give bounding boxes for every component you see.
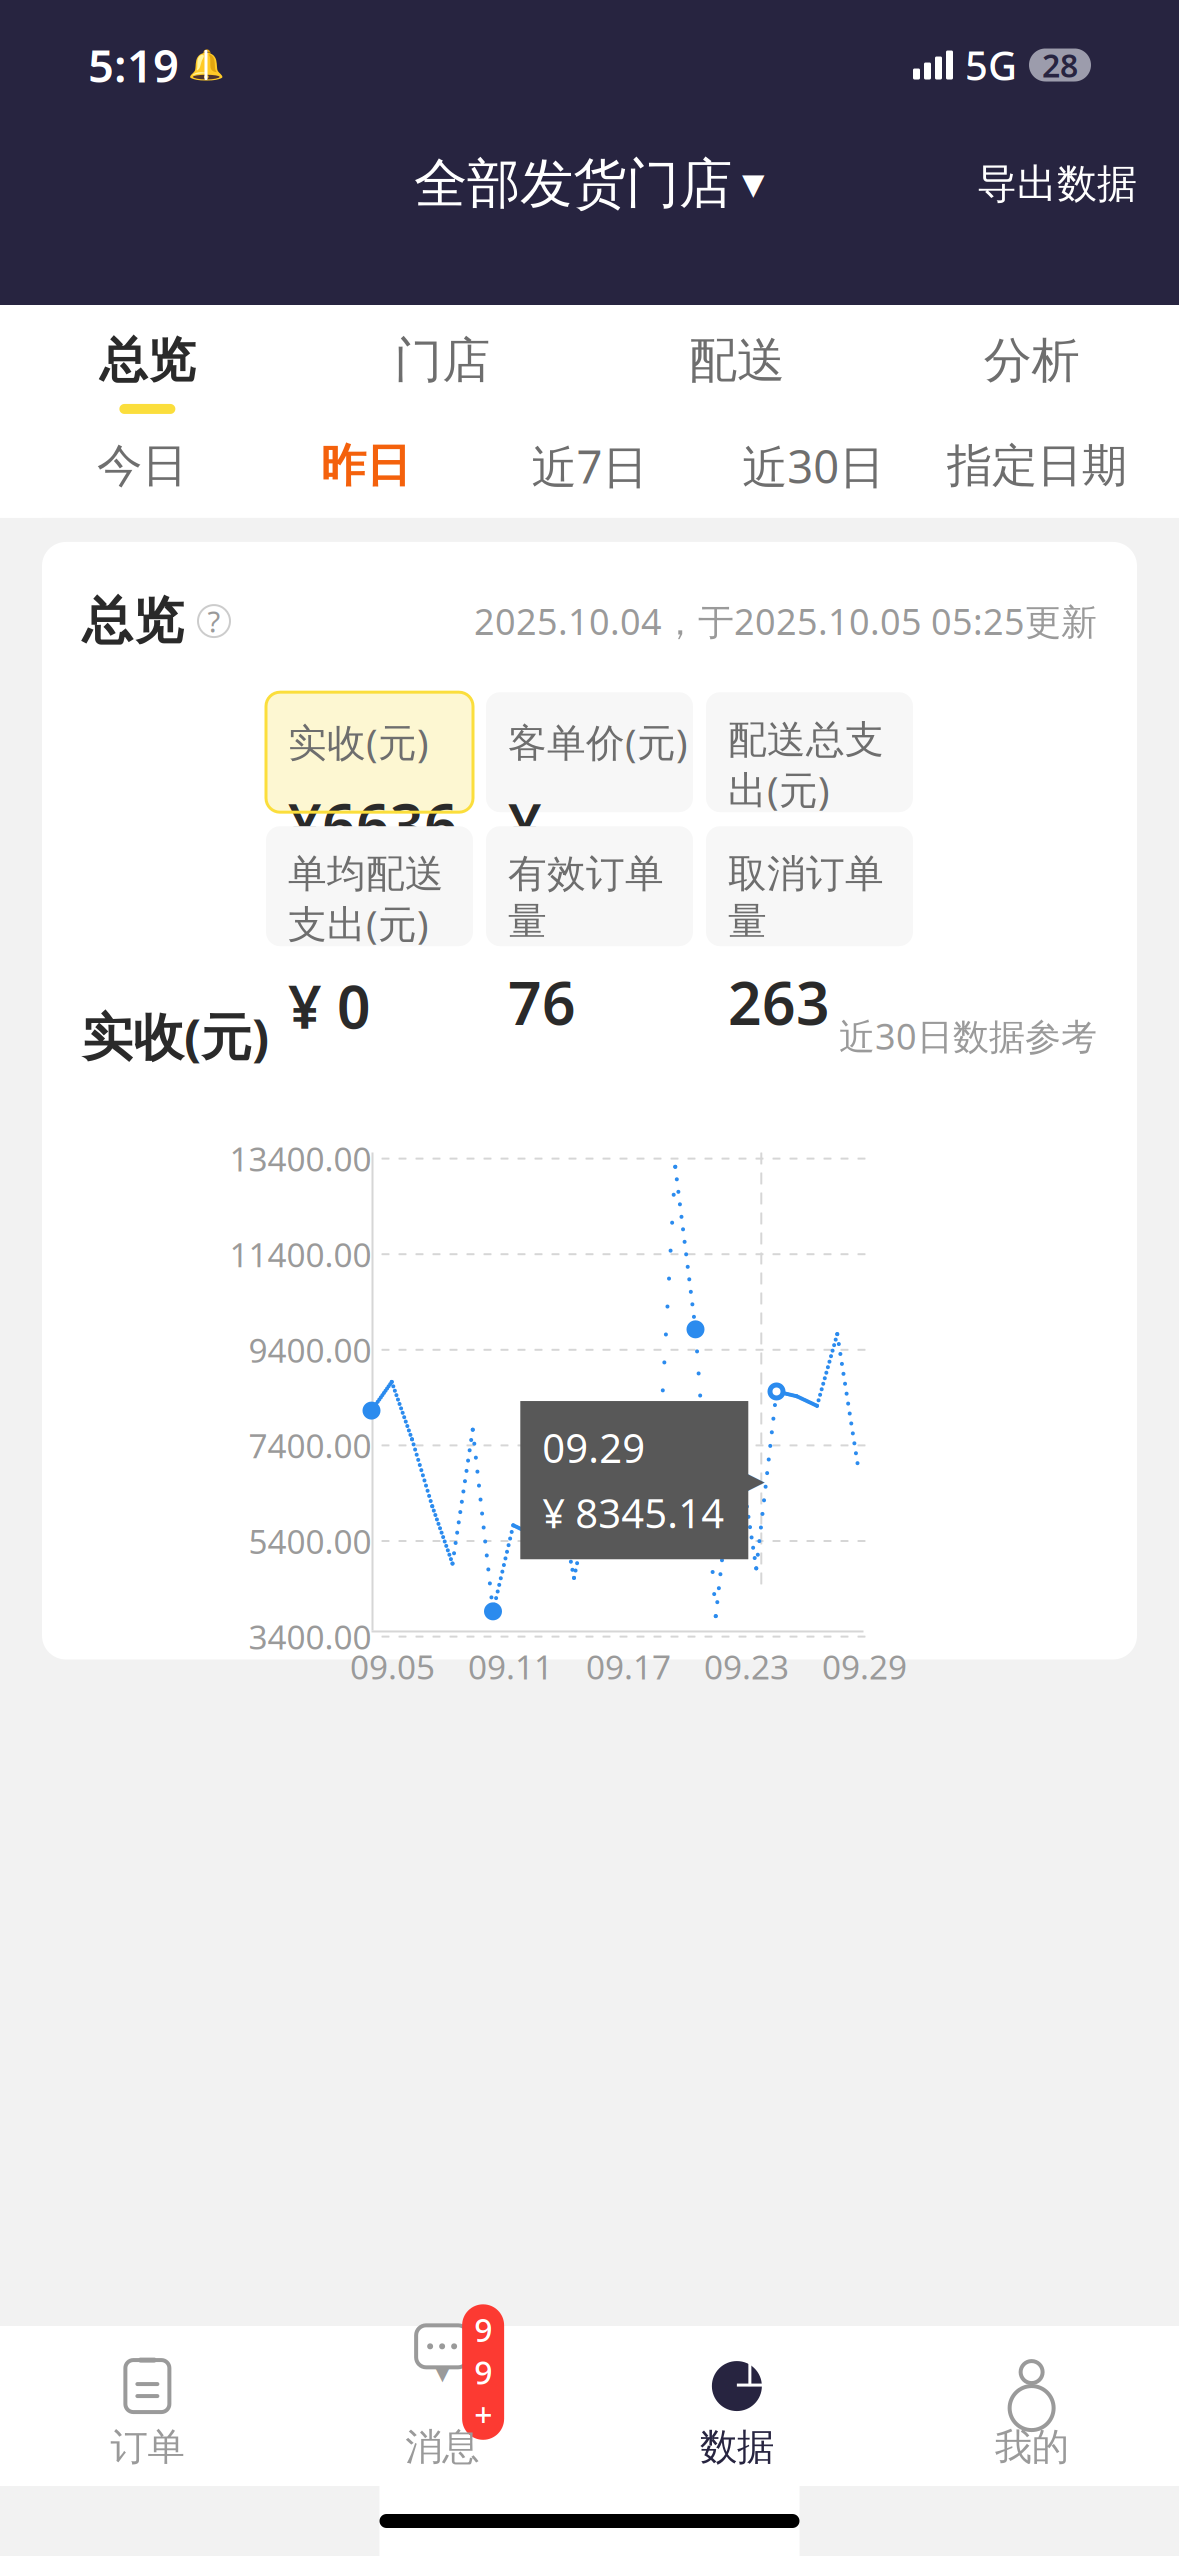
button[interactable]: 全部发货门店 — [414, 151, 765, 217]
staticText: 单均配送支出(元) — [288, 850, 444, 949]
staticText: 近7日 — [531, 436, 647, 496]
button[interactable]: 我的 — [884, 2358, 1179, 2470]
staticText: 导出数据 — [977, 159, 1137, 208]
button[interactable]: 有效订单量 — [486, 826, 693, 946]
staticText: 全部发货门店 — [414, 151, 732, 217]
staticText: 消息 — [405, 2424, 479, 2470]
staticText: 实收(元) — [288, 716, 429, 767]
staticText: 订单 — [110, 2424, 184, 2470]
button[interactable]: 近7日 — [478, 436, 701, 496]
button[interactable]: 导出数据 — [977, 159, 1137, 208]
staticText: 实收(元) — [82, 1002, 269, 1069]
staticText: 263 — [728, 963, 830, 1041]
staticText: 09.17 — [586, 1644, 671, 1689]
staticText: 🔔 — [187, 48, 224, 82]
button[interactable]: 近30日 — [701, 436, 925, 496]
staticText: 09.29 — [822, 1644, 907, 1689]
staticText: 5:19 — [88, 35, 179, 95]
staticText: ¥ 0 — [288, 967, 371, 1045]
staticText: ▶ — [744, 1465, 765, 1495]
staticText: 76 — [508, 963, 576, 1041]
staticText: 有效订单量 — [508, 850, 664, 945]
staticText: 指定日期 — [947, 438, 1127, 494]
staticText: 09.29 — [542, 1421, 645, 1474]
staticText: 近30日 — [742, 436, 884, 496]
staticText: 09.23 — [704, 1644, 789, 1689]
staticText: 5400.00 — [248, 1519, 371, 1563]
button[interactable]: 分析 — [884, 305, 1179, 414]
staticText: 28 — [1042, 44, 1078, 86]
staticText: 09.05 — [350, 1644, 435, 1689]
staticText: ? — [207, 602, 220, 641]
staticText: 配送 — [689, 331, 785, 390]
button[interactable]: 实收(元) — [266, 692, 473, 812]
staticText: 11400.00 — [229, 1232, 371, 1276]
staticText: 总览 — [82, 590, 184, 652]
staticText: 3400.00 — [248, 1614, 371, 1659]
button[interactable]: 客单价(元) — [486, 692, 693, 812]
staticText: 配送总支出(元) — [728, 716, 884, 815]
button[interactable]: 门店 — [295, 305, 590, 414]
button[interactable]: 单均配送支出(元) — [266, 826, 473, 946]
staticText: 我的 — [995, 2424, 1069, 2470]
button[interactable]: 取消订单量 — [706, 826, 913, 946]
staticText: ▼ — [434, 2360, 450, 2384]
staticText: 近30日数据参考 — [839, 1012, 1097, 1060]
staticText: 客单价(元) — [508, 716, 688, 767]
button[interactable]: 指定日期 — [925, 438, 1149, 494]
staticText: 今日 — [97, 438, 187, 494]
staticText: ▼ — [742, 167, 765, 201]
staticText: 9400.00 — [248, 1328, 371, 1372]
staticText: 分析 — [984, 331, 1080, 390]
button[interactable]: 数据 — [589, 2358, 884, 2470]
button[interactable]: 昨日 — [254, 438, 478, 494]
staticText: 数据 — [700, 2424, 774, 2470]
button[interactable]: 订单 — [0, 2358, 295, 2470]
button[interactable]: 配送总支出(元) — [706, 692, 913, 812]
button[interactable]: ▼ — [295, 2358, 590, 2470]
button[interactable]: 总览 — [0, 305, 295, 414]
staticText: ¥ 87.32 — [508, 785, 660, 941]
staticText: 5G — [965, 38, 1017, 91]
staticText: 7400.00 — [248, 1423, 371, 1468]
staticText: ¥ 0 — [728, 833, 811, 911]
staticText: 99+ — [474, 2308, 492, 2436]
staticText: 13400.00 — [229, 1136, 371, 1181]
staticText: 取消订单量 — [728, 850, 884, 945]
staticText: 门店 — [394, 331, 490, 390]
button[interactable]: 配送 — [589, 305, 884, 414]
staticText: ¥6636.57 — [288, 785, 458, 941]
staticText: 2025.10.04，于2025.10.05 05:25更新 — [474, 597, 1097, 645]
button[interactable]: 说明 — [198, 605, 230, 637]
staticText: ¥ 8345.14 — [542, 1486, 724, 1539]
staticText: 昨日 — [321, 438, 411, 494]
staticText: 09.11 — [468, 1644, 553, 1689]
staticText: 总览 — [99, 331, 195, 390]
button[interactable]: 今日 — [30, 438, 254, 494]
